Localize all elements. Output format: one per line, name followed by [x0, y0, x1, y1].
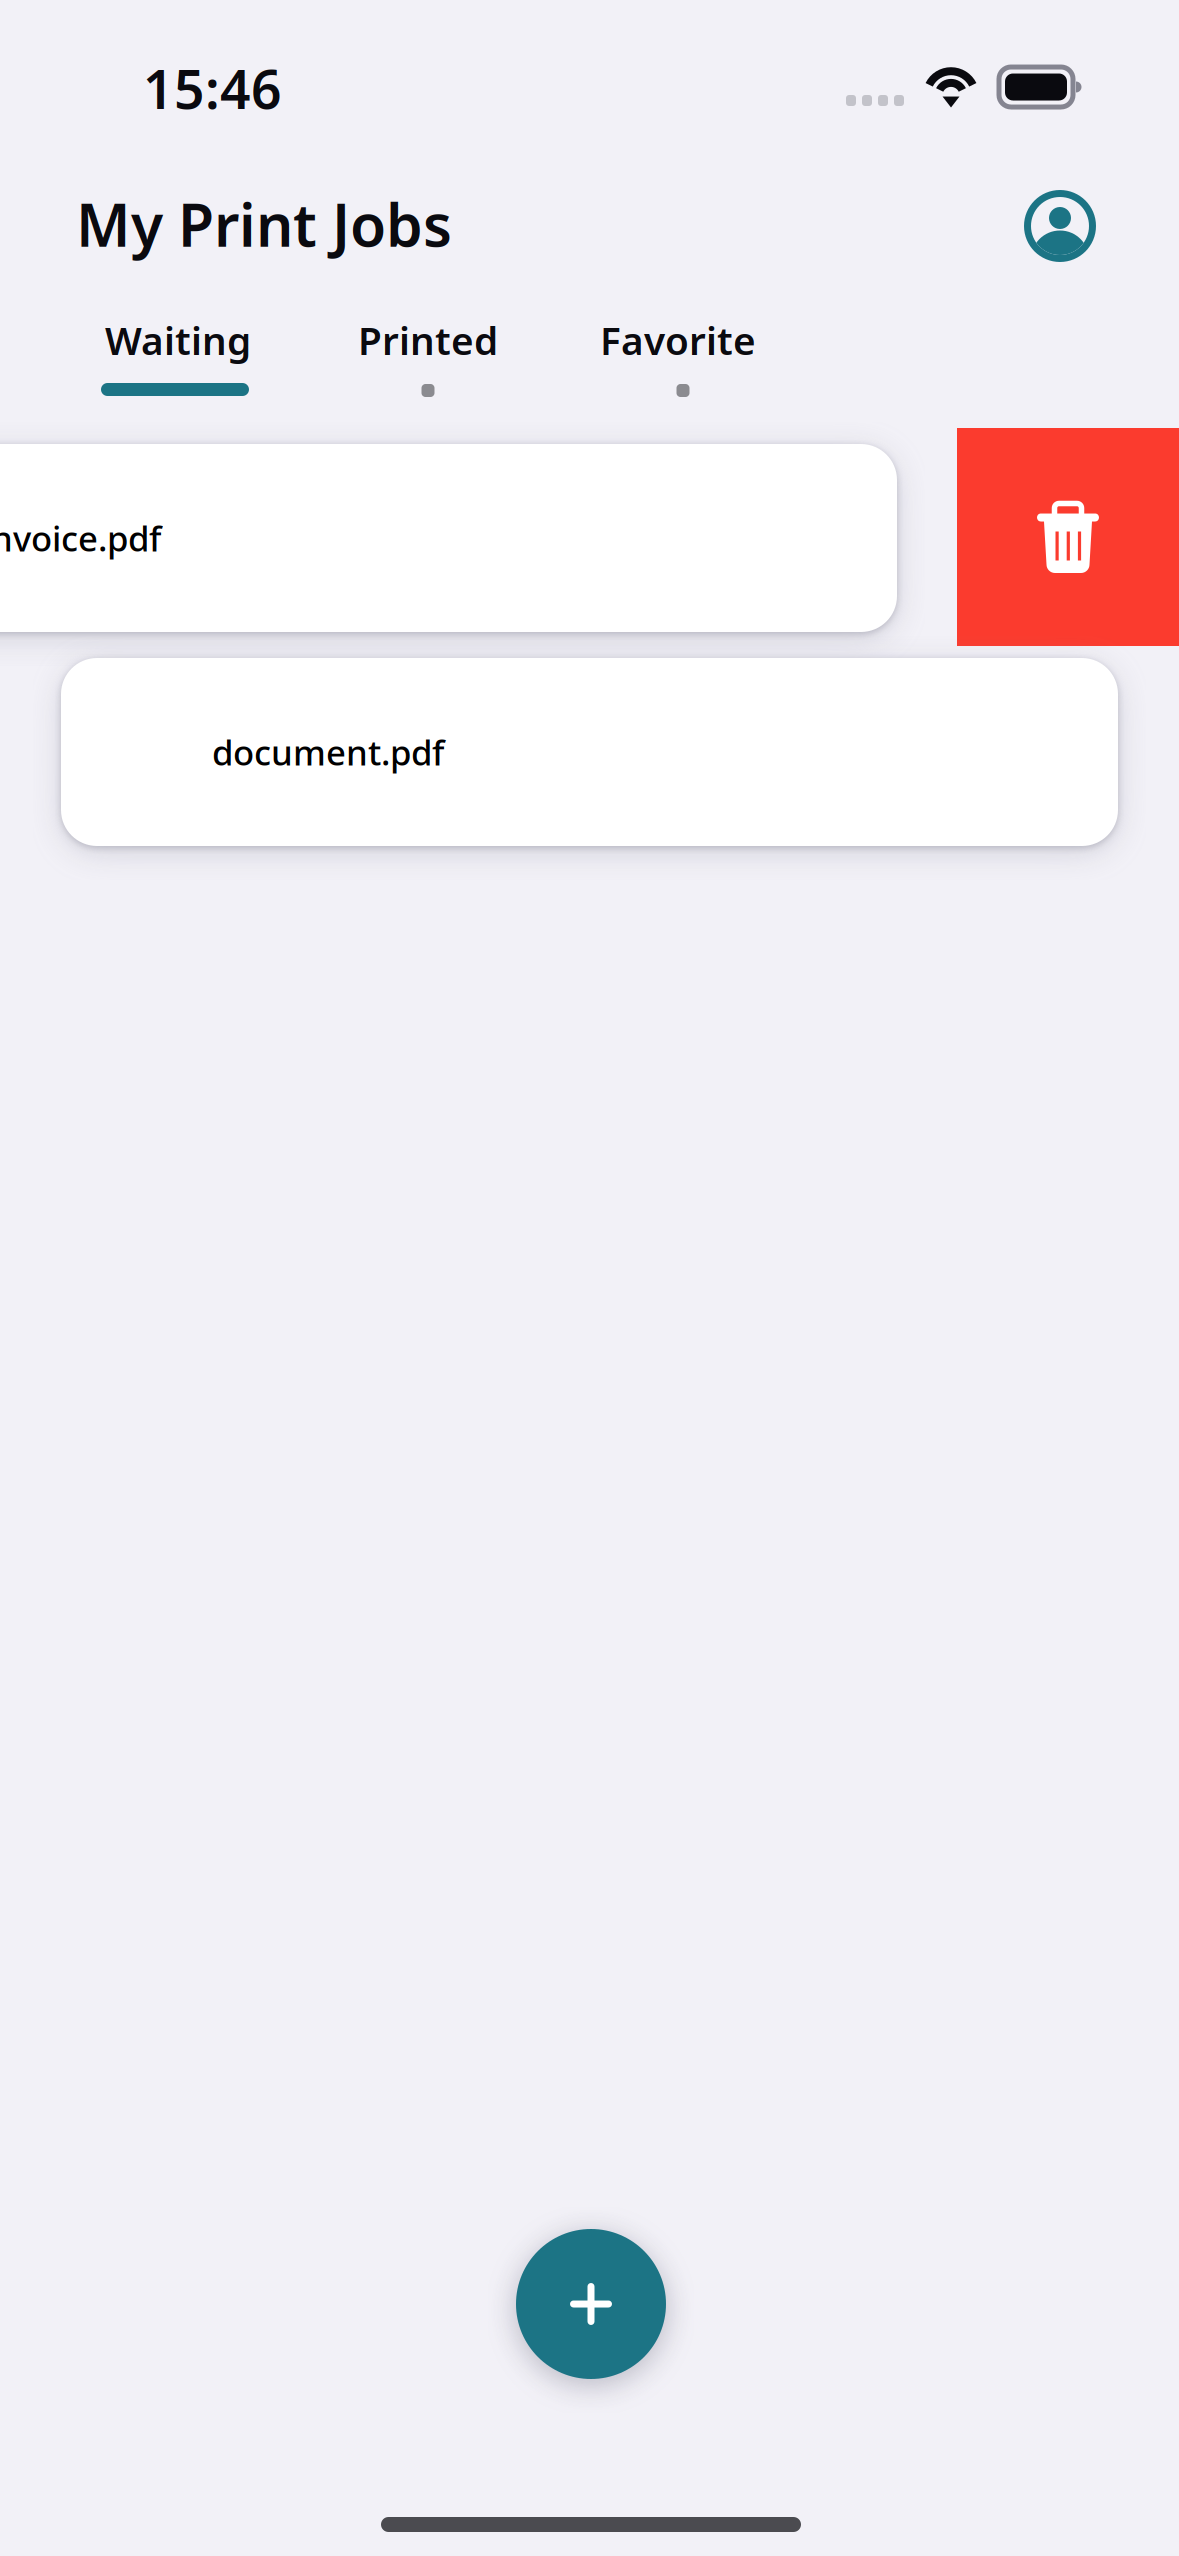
- button[interactable]: Waiting: [104, 318, 252, 408]
- button[interactable]: Favorite: [600, 318, 756, 408]
- staticText: 15:46: [143, 53, 282, 124]
- staticText: Favorite: [600, 314, 756, 366]
- button[interactable]: Printed: [358, 318, 498, 408]
- button[interactable]: invoice.pdf: [0, 444, 897, 632]
- button[interactable]: Delete: [957, 428, 1179, 646]
- staticText: invoice.pdf: [0, 515, 161, 561]
- staticText: document.pdf: [212, 729, 444, 775]
- staticText: My Print Jobs: [76, 185, 452, 263]
- button[interactable]: document.pdf: [61, 658, 1118, 846]
- button[interactable]: Profile: [1008, 174, 1112, 278]
- staticText: Waiting: [105, 314, 251, 366]
- staticText: Printed: [358, 314, 498, 366]
- button[interactable]: Add print job: [516, 2229, 666, 2379]
